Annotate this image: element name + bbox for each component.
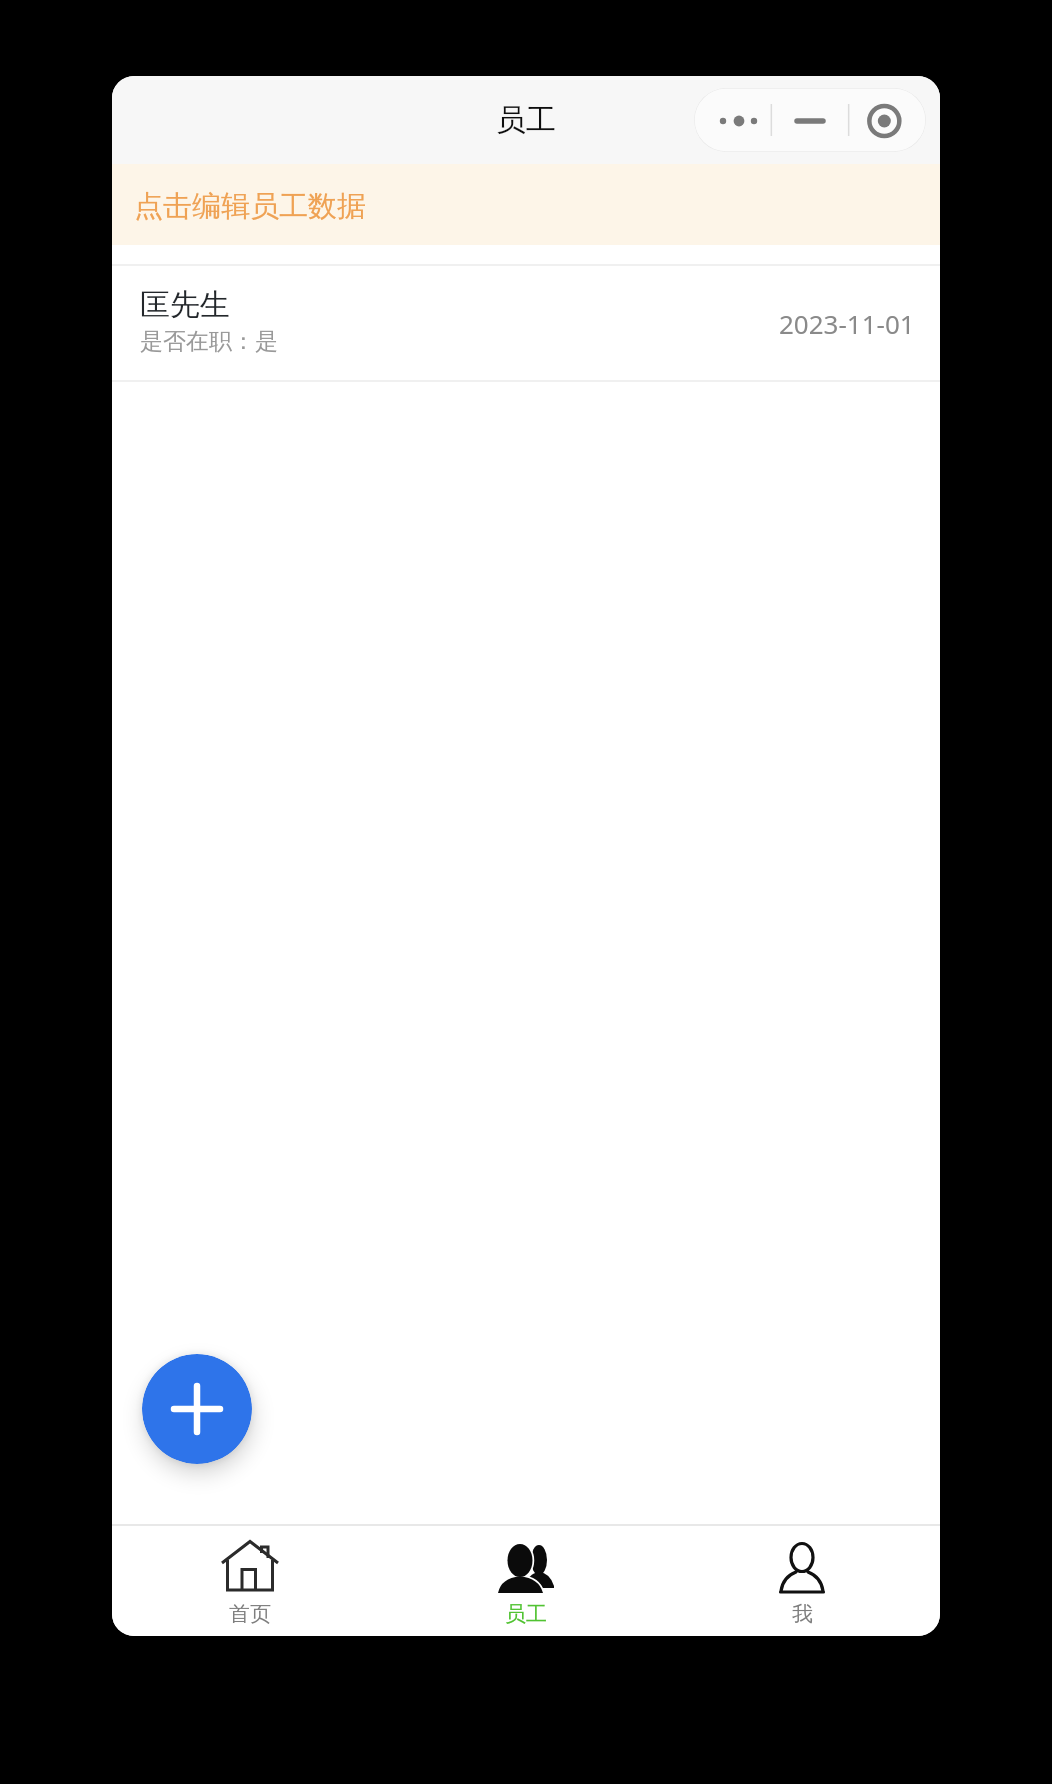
button[interactable]: [694, 88, 926, 152]
button[interactable]: 匡先生: [112, 266, 940, 380]
staticText: 点击编辑员工数据: [134, 188, 366, 225]
staticText: 匡先生: [140, 286, 230, 324]
button[interactable]: 我: [664, 1526, 940, 1636]
button[interactable]: [142, 1354, 252, 1464]
staticText: 员工: [496, 101, 556, 139]
staticText: 首页: [229, 1601, 271, 1627]
staticText: 我: [792, 1601, 813, 1627]
button[interactable]: 员工: [388, 1526, 664, 1636]
button[interactable]: 首页: [112, 1526, 388, 1636]
staticText: 是否在职：是: [140, 327, 278, 356]
staticText: 2023-11-01: [779, 306, 915, 341]
staticText: 员工: [505, 1601, 547, 1627]
button[interactable]: 点击编辑员工数据: [112, 164, 940, 245]
